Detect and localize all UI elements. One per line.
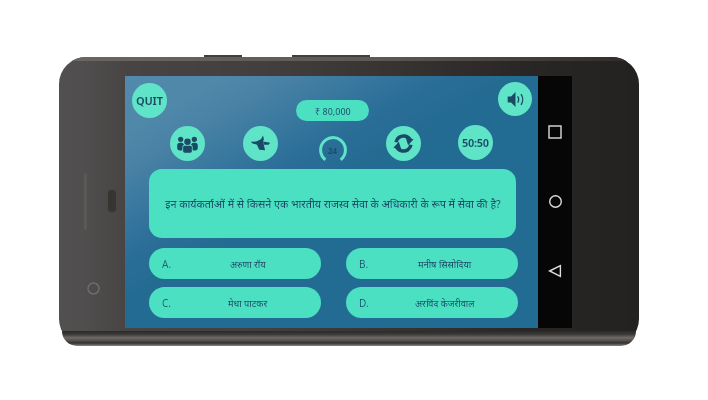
staticText: D. [359,296,369,310]
staticText: A. [162,257,172,271]
staticText: B. [359,257,369,271]
staticText: QUIT [136,93,163,108]
staticText: इन कार्यकर्ताओं में से किसने एक भारतीय र… [165,197,501,211]
staticText: 50:50 [462,135,489,150]
button[interactable]: Ask the audience [170,126,205,161]
button[interactable]: ₹ 80,000 [296,100,369,121]
button[interactable]: Swap question [386,126,421,161]
button[interactable]: B. [346,248,518,279]
button[interactable]: Recents [545,122,565,142]
staticText: मेधा पाटकर [228,297,268,309]
button[interactable]: Phone a friend [243,126,278,161]
button[interactable]: C. [149,287,321,318]
button[interactable]: Home [545,191,565,211]
button[interactable]: 50:50 [458,125,493,160]
staticText: अरुणा रॉय [230,258,266,270]
button[interactable]: इन कार्यकर्ताओं में से किसने एक भारतीय र… [149,169,516,238]
staticText: 24 [328,145,338,156]
button[interactable]: A. [149,248,321,279]
button[interactable]: Sound [498,82,532,116]
staticText: अरविंद केजरीवाल [415,297,475,309]
button[interactable]: QUIT [132,83,167,118]
staticText: मनीष सिसोदिया [418,258,472,270]
button[interactable]: Back [545,261,565,281]
button[interactable]: D. [346,287,518,318]
staticText: ₹ 80,000 [315,105,351,117]
staticText: C. [162,296,171,310]
